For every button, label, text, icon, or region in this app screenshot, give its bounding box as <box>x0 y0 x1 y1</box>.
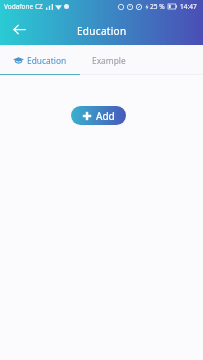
staticText: 25 % <box>150 2 165 11</box>
button[interactable]: Back <box>6 16 32 42</box>
button[interactable]: Add <box>71 106 126 125</box>
staticText: Education <box>77 24 127 38</box>
staticText: Example <box>92 55 126 66</box>
staticText: Add <box>96 109 115 123</box>
staticText: Education <box>27 55 67 66</box>
staticText: 14:47 <box>180 2 197 11</box>
button[interactable]: Education <box>0 45 80 75</box>
staticText: Vodafone CZ <box>4 2 43 11</box>
button[interactable]: Example <box>80 45 137 75</box>
